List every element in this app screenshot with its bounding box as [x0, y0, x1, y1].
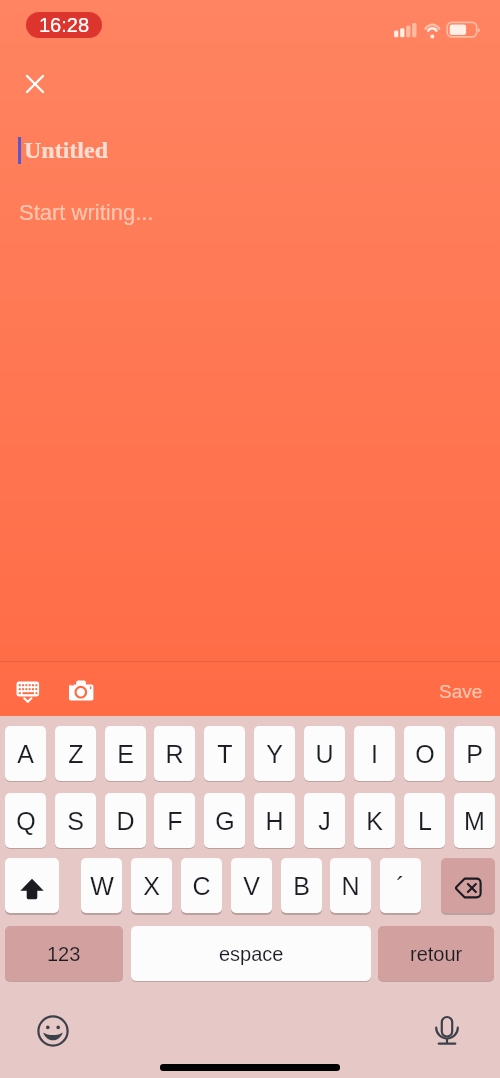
- button[interactable]: V: [231, 858, 272, 913]
- staticText: Untitled: [24, 137, 108, 164]
- staticText: Start writing...: [19, 200, 154, 225]
- staticText: J: [318, 807, 331, 835]
- staticText: T: [217, 740, 233, 768]
- button[interactable]: S: [55, 793, 96, 848]
- staticText: 123: [47, 943, 81, 965]
- staticText: U: [315, 740, 334, 768]
- staticText: C: [192, 872, 211, 900]
- button[interactable]: K: [354, 793, 395, 848]
- button[interactable]: P: [454, 726, 495, 781]
- button[interactable]: L: [404, 793, 445, 848]
- staticText: espace: [219, 943, 284, 965]
- button[interactable]: ´: [380, 858, 421, 913]
- button[interactable]: J: [304, 793, 345, 848]
- staticText: A: [17, 740, 34, 768]
- button[interactable]: espace: [131, 926, 371, 981]
- staticText: ´: [396, 872, 405, 900]
- button[interactable]: I: [354, 726, 395, 781]
- button[interactable]: M: [454, 793, 495, 848]
- staticText: S: [67, 807, 84, 835]
- button[interactable]: Hide keyboard: [9, 676, 47, 706]
- staticText: E: [117, 740, 134, 768]
- staticText: Save: [439, 681, 483, 702]
- button[interactable]: U: [304, 726, 345, 781]
- staticText: Z: [68, 740, 84, 768]
- button[interactable]: A: [5, 726, 46, 781]
- button[interactable]: Dictation: [425, 1009, 469, 1053]
- button[interactable]: G: [204, 793, 245, 848]
- button[interactable]: X: [131, 858, 172, 913]
- staticText: Q: [16, 807, 36, 835]
- button[interactable]: B: [281, 858, 322, 913]
- button[interactable]: E: [105, 726, 146, 781]
- button[interactable]: Close: [19, 68, 51, 100]
- button[interactable]: Emoji: [31, 1009, 75, 1053]
- staticText: H: [265, 807, 284, 835]
- staticText: O: [415, 740, 435, 768]
- staticText: G: [215, 807, 235, 835]
- button[interactable]: Q: [5, 793, 46, 848]
- staticText: Y: [266, 740, 283, 768]
- staticText: M: [464, 807, 485, 835]
- staticText: F: [167, 807, 183, 835]
- staticText: I: [371, 740, 378, 768]
- button[interactable]: Save: [430, 676, 492, 706]
- button[interactable]: retour: [378, 926, 494, 981]
- button[interactable]: Camera: [64, 676, 100, 702]
- staticText: V: [243, 872, 260, 900]
- staticText: R: [165, 740, 184, 768]
- staticText: X: [143, 872, 160, 900]
- staticText: L: [418, 807, 432, 835]
- button[interactable]: Backspace: [441, 858, 495, 913]
- staticText: 16:28: [39, 14, 90, 36]
- button[interactable]: Z: [55, 726, 96, 781]
- button[interactable]: 123: [5, 926, 123, 981]
- button[interactable]: N: [330, 858, 371, 913]
- button[interactable]: Y: [254, 726, 295, 781]
- button[interactable]: T: [204, 726, 245, 781]
- staticText: N: [341, 872, 360, 900]
- button[interactable]: O: [404, 726, 445, 781]
- staticText: retour: [410, 943, 463, 965]
- staticText: B: [293, 872, 310, 900]
- staticText: P: [466, 740, 483, 768]
- button[interactable]: Shift: [5, 858, 59, 913]
- staticText: K: [366, 807, 383, 835]
- staticText: W: [90, 872, 114, 900]
- button[interactable]: F: [154, 793, 195, 848]
- button[interactable]: D: [105, 793, 146, 848]
- button[interactable]: C: [181, 858, 222, 913]
- button[interactable]: H: [254, 793, 295, 848]
- button[interactable]: R: [154, 726, 195, 781]
- button[interactable]: W: [81, 858, 122, 913]
- staticText: D: [116, 807, 135, 835]
